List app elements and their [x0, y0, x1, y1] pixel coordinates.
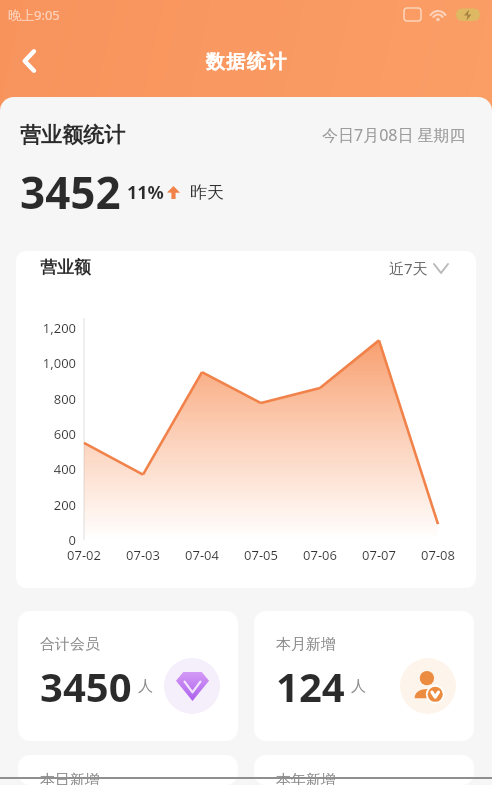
staticText: 800 [16, 390, 76, 408]
staticText: 数据统计 [205, 50, 287, 74]
staticText: 07-04 [180, 546, 224, 564]
staticText: 0 [16, 531, 76, 549]
staticText: 07-06 [298, 546, 342, 564]
staticText: 1,200 [16, 319, 76, 337]
button[interactable]: 本年新增 [254, 755, 474, 785]
button[interactable]: 本月新增 [254, 611, 474, 741]
staticText: 124 [276, 659, 345, 713]
staticText: 营业额 [40, 257, 91, 278]
staticText: 1,000 [16, 354, 76, 372]
staticText: 今日7月08日 星期四 [322, 124, 466, 146]
staticText: 昨天 [190, 182, 224, 203]
staticText: 人 [138, 677, 153, 696]
staticText: 本日新增 [40, 771, 100, 785]
staticText: 营业额统计 [20, 122, 125, 148]
staticText: 200 [16, 496, 76, 514]
staticText: 晚上9:05 [8, 6, 60, 24]
staticText: 3452 [20, 162, 121, 222]
staticText: 11% [127, 180, 164, 205]
staticText: 07-08 [416, 546, 460, 564]
staticText: 近7天 [389, 258, 428, 278]
button[interactable]: 合计会员 [18, 611, 238, 741]
button[interactable]: 近7天 [389, 258, 448, 278]
staticText: 400 [16, 460, 76, 478]
staticText: 07-07 [357, 546, 401, 564]
button[interactable]: 本日新增 [18, 755, 238, 785]
staticText: 合计会员 [40, 635, 100, 654]
staticText: 本年新增 [276, 771, 336, 785]
button[interactable] [12, 43, 48, 79]
staticText: 人 [351, 677, 366, 696]
staticText: 本月新增 [276, 635, 336, 654]
staticText: 07-05 [239, 546, 283, 564]
staticText: 07-02 [62, 546, 106, 564]
staticText: 3450 [40, 659, 132, 713]
staticText: 600 [16, 425, 76, 443]
staticText: 07-03 [121, 546, 165, 564]
